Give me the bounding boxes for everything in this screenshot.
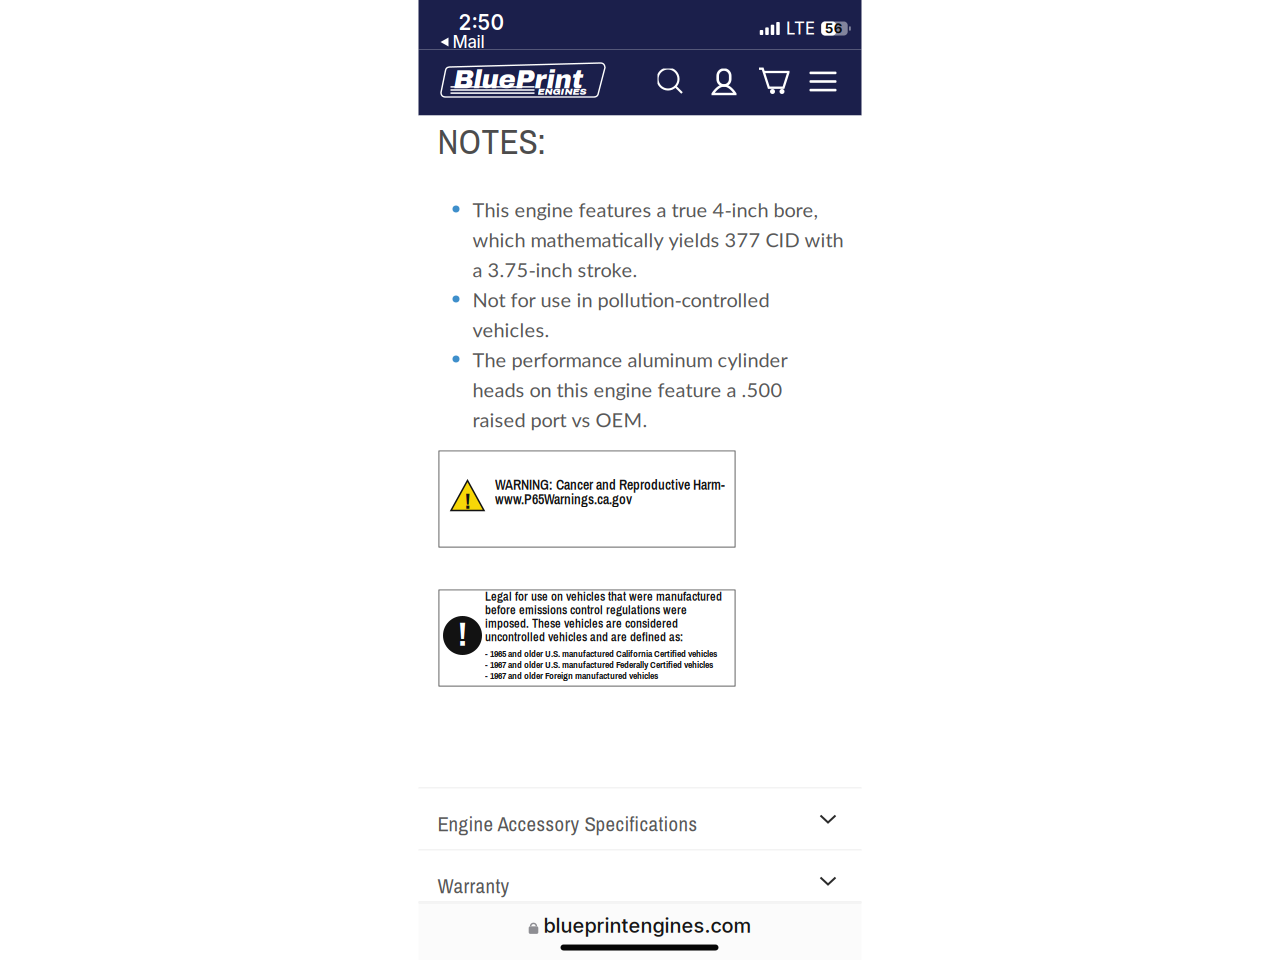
staticText: WARNING: Cancer and Reproductive Harm-	[495, 475, 725, 494]
staticText: 2:50	[458, 10, 504, 35]
staticText: Legal for use on vehicles that were manu…	[485, 588, 722, 604]
staticText: !	[457, 616, 467, 653]
button[interactable]: Menu	[809, 71, 836, 91]
button[interactable]: Back to Mail	[440, 33, 484, 50]
staticText: before emissions control regulations wer…	[485, 601, 687, 618]
staticText: Mail	[452, 32, 484, 52]
button[interactable]: Warranty	[418, 850, 861, 901]
staticText: - 1967 and older U.S. manufactured Feder…	[485, 658, 713, 671]
staticText: LTE	[786, 18, 815, 39]
staticText: a 3.75-inch stroke.	[472, 257, 637, 281]
button[interactable]: Search	[657, 68, 683, 95]
staticText: raised port vs OEM.	[472, 407, 647, 431]
staticText: imposed. These vehicles are considered	[485, 615, 678, 631]
button[interactable]: Account	[711, 68, 736, 95]
staticText: Not for use in pollution-controlled	[472, 287, 769, 311]
staticText: Warranty	[437, 871, 509, 900]
button[interactable]: Address: blueprintengines.com	[418, 913, 861, 937]
staticText: 56	[825, 20, 843, 36]
staticText: - 1965 and older U.S. manufactured Calif…	[485, 647, 717, 660]
button[interactable]: Cart	[758, 67, 789, 94]
staticText: ENGINES	[537, 86, 586, 97]
staticText: The performance aluminum cylinder	[472, 347, 787, 371]
button[interactable]: BluePrint Engines home	[439, 60, 609, 100]
staticText: heads on this engine feature a .500	[472, 377, 782, 401]
staticText: vehicles.	[472, 317, 549, 341]
staticText: BluePrint	[453, 65, 583, 94]
staticText: - 1967 and older Foreign manufactured ve…	[485, 669, 658, 682]
staticText: uncontrolled vehicles and are defined as…	[485, 628, 683, 645]
staticText: This engine features a true 4-inch bore,	[472, 197, 818, 221]
button[interactable]: Engine Accessory Specifications	[418, 788, 861, 849]
staticText: which mathematically yields 377 CID with	[472, 227, 843, 251]
staticText: NOTES:	[437, 117, 545, 165]
staticText: www.P65Warnings.ca.gov	[495, 490, 632, 509]
staticText: !	[464, 490, 470, 513]
staticText: blueprintengines.com	[543, 913, 751, 938]
staticText: Engine Accessory Specifications	[437, 809, 697, 838]
